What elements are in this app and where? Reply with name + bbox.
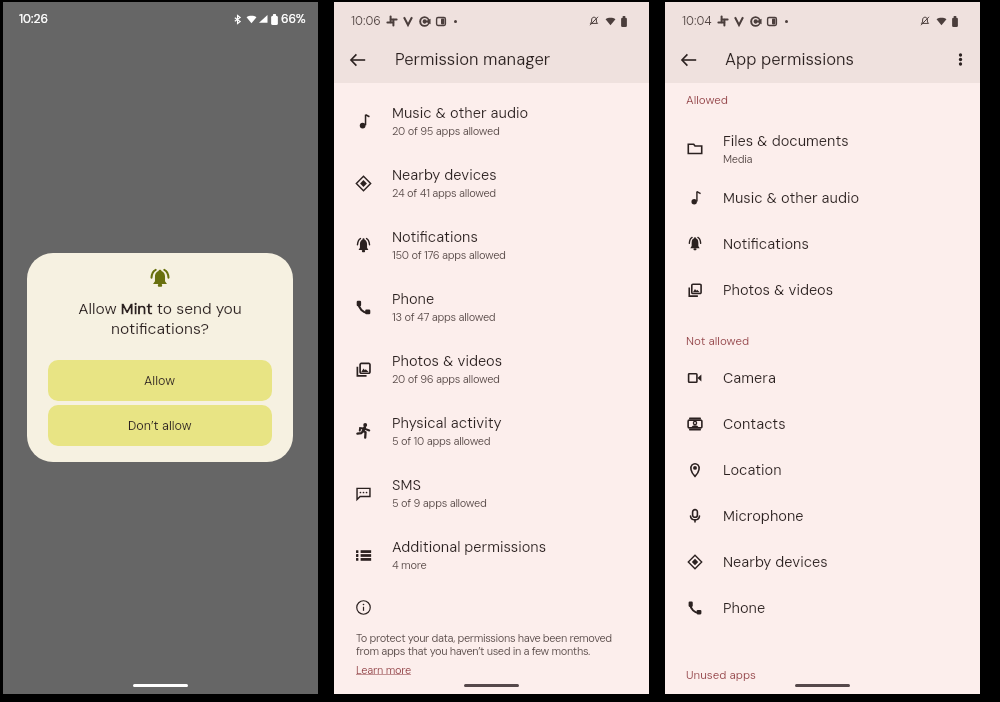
button[interactable]: Don’t allow [48,405,272,446]
button[interactable]: Notifications [665,221,980,267]
staticText: Music & other audio [392,104,529,123]
staticText: Not allowed [686,334,750,349]
button[interactable]: Files & documents [665,122,980,175]
staticText: Don’t allow [128,418,192,434]
button[interactable]: Location [665,447,980,493]
staticText: Music & other audio [723,189,860,208]
button[interactable]: Allow [48,360,272,401]
button[interactable]: Notifications [334,214,649,276]
button[interactable]: Additional permissions [334,524,649,586]
staticText: Location [723,461,782,480]
button[interactable]: Physical activity [334,400,649,462]
button[interactable]: Nearby devices [665,539,980,585]
staticText: 5 of 10 apps allowed [392,434,491,448]
staticText: Learn more [356,663,412,677]
staticText: Allow Mint to send you notifications? [41,299,279,339]
button[interactable]: Phone [665,585,980,631]
button[interactable]: Nearby devices [334,152,649,214]
staticText: 10:26 [19,11,49,27]
staticText: Nearby devices [392,166,497,185]
staticText: 10:06 [351,13,381,29]
button[interactable]: Photos & videos [334,338,649,400]
staticText: Nearby devices [723,553,828,572]
staticText: Unused apps [686,668,756,683]
button[interactable]: Back [334,36,381,83]
staticText: 13 of 47 apps allowed [392,310,496,324]
staticText: Notifications [392,228,478,247]
staticText: Contacts [723,415,786,434]
staticText: 10:04 [682,13,712,29]
button[interactable]: Contacts [665,401,980,447]
staticText: Physical activity [392,414,502,433]
staticText: Allowed [686,93,728,108]
button[interactable]: Music & other audio [334,90,649,152]
button[interactable]: Back [665,36,712,83]
staticText: 66% [281,11,306,27]
button[interactable]: SMS [334,462,649,524]
button[interactable]: Photos & videos [665,267,980,313]
staticText: 5 of 9 apps allowed [392,496,487,510]
staticText: 24 of 41 apps allowed [392,186,496,200]
staticText: Phone [723,599,766,618]
button[interactable]: Learn more [356,663,412,677]
button[interactable]: Microphone [665,493,980,539]
staticText: Allow [144,373,176,389]
staticText: Files & documents [723,132,849,151]
staticText: Microphone [723,507,804,526]
staticText: Photos & videos [392,352,503,371]
staticText: Phone [392,290,435,309]
staticText: Permission manager [395,49,551,70]
staticText: Photos & videos [723,281,834,300]
staticText: 4 more [392,558,427,572]
button[interactable]: Phone [334,276,649,338]
staticText: SMS [392,476,421,495]
staticText: Media [723,152,753,166]
button[interactable]: More options [941,36,980,83]
staticText: Camera [723,369,776,388]
button[interactable]: Music & other audio [665,175,980,221]
staticText: 20 of 96 apps allowed [392,372,500,386]
staticText: App permissions [725,49,855,70]
staticText: 20 of 95 apps allowed [392,124,500,138]
button[interactable]: Camera [665,355,980,401]
staticText: Notifications [723,235,809,254]
staticText: To protect your data, permissions have b… [356,631,621,658]
staticText: 150 of 176 apps allowed [392,248,506,262]
staticText: Additional permissions [392,538,547,557]
